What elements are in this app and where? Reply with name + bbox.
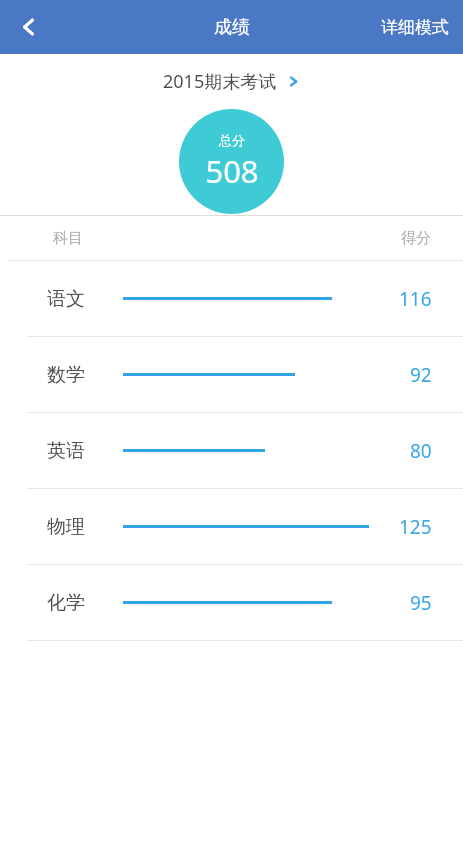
staticText: 数学: [47, 363, 85, 387]
button[interactable]: 2015期末考试: [157, 65, 306, 98]
button[interactable]: 语文: [0, 261, 463, 336]
staticText: 成绩: [214, 16, 250, 39]
button[interactable]: 化学: [0, 565, 463, 640]
staticText: 2015期末考试: [163, 69, 277, 94]
staticText: 详细模式: [381, 17, 449, 38]
staticText: 92: [410, 362, 432, 388]
staticText: 总分: [219, 132, 245, 148]
staticText: 科目: [53, 229, 83, 248]
staticText: 英语: [47, 439, 85, 463]
staticText: 物理: [47, 515, 85, 539]
staticText: 得分: [401, 229, 431, 248]
button[interactable]: 数学: [0, 337, 463, 412]
button[interactable]: 详细模式: [367, 0, 463, 54]
staticText: 125: [399, 514, 432, 540]
staticText: 508: [205, 150, 259, 192]
button[interactable]: 物理: [0, 489, 463, 564]
staticText: 语文: [47, 287, 85, 311]
staticText: 80: [410, 438, 432, 464]
staticText: 化学: [47, 591, 85, 615]
button[interactable]: Back: [0, 0, 58, 54]
staticText: 95: [410, 590, 432, 616]
button[interactable]: 总分: [179, 109, 284, 214]
button[interactable]: 英语: [0, 413, 463, 488]
staticText: 116: [399, 286, 432, 312]
